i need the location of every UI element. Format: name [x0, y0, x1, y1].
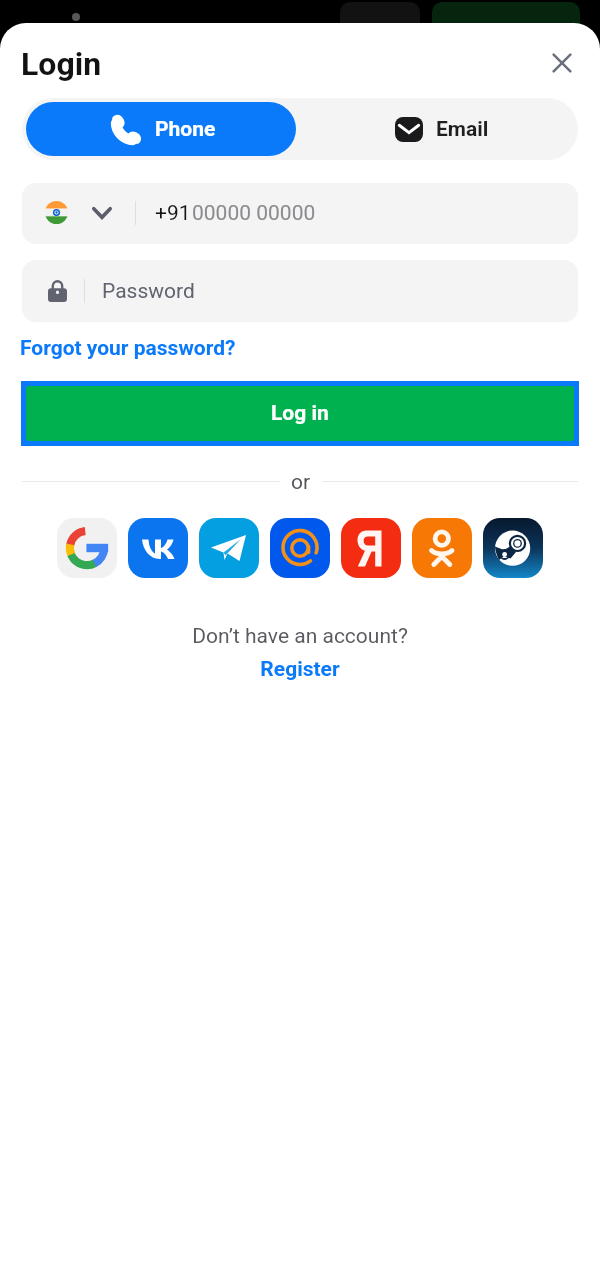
- staticText: Don’t have an account?: [0, 624, 600, 649]
- button[interactable]: Forgot your password?: [20, 336, 236, 361]
- button[interactable]: Log in: [26, 386, 574, 441]
- button[interactable]: Email: [300, 98, 578, 160]
- button[interactable]: Sign in with VK: [128, 518, 188, 578]
- staticText: 00000 00000: [192, 201, 316, 226]
- button[interactable]: Close: [539, 40, 584, 85]
- button[interactable]: [22, 260, 578, 322]
- staticText: Email: [436, 117, 489, 142]
- button[interactable]: [22, 183, 578, 244]
- button[interactable]: Register: [0, 657, 600, 682]
- staticText: Login: [21, 45, 102, 83]
- button[interactable]: Sign in with Odnoklassniki: [412, 518, 472, 578]
- button[interactable]: Sign in with Steam: [483, 518, 543, 578]
- staticText: Password: [102, 279, 195, 304]
- button[interactable]: Sign in with Yandex: [341, 518, 401, 578]
- staticText: Phone: [155, 117, 216, 142]
- button[interactable]: Phone: [26, 102, 296, 156]
- button[interactable]: Sign in with Telegram: [199, 518, 259, 578]
- button[interactable]: Sign in with Google: [57, 518, 117, 578]
- staticText: +91: [155, 201, 191, 226]
- button[interactable]: Sign in with Mail.ru: [270, 518, 330, 578]
- staticText: Log in: [271, 401, 329, 426]
- staticText: or: [291, 470, 311, 495]
